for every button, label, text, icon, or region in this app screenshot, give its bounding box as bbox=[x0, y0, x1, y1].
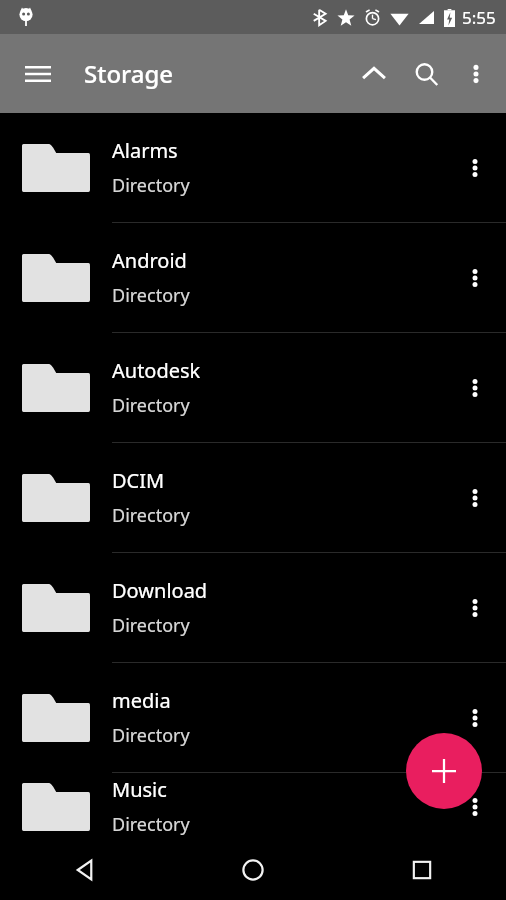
button[interactable]: More options bbox=[452, 50, 500, 98]
button[interactable]: More options for media bbox=[444, 663, 506, 772]
staticText: Music bbox=[112, 776, 167, 803]
button[interactable]: Home bbox=[168, 840, 337, 900]
staticText: Directory bbox=[112, 173, 190, 198]
button[interactable]: More options for Autodesk bbox=[444, 333, 506, 442]
staticText: Download bbox=[112, 577, 208, 604]
staticText: 5:55 bbox=[462, 6, 496, 29]
staticText: Directory bbox=[112, 503, 190, 528]
staticText: Directory bbox=[112, 812, 190, 837]
button[interactable]: More options for Download bbox=[444, 553, 506, 662]
staticText: Android bbox=[112, 247, 187, 274]
button[interactable]: Autodesk bbox=[0, 333, 506, 442]
button[interactable]: More options for Music bbox=[444, 773, 506, 840]
button[interactable]: Android bbox=[0, 223, 506, 332]
staticText: Directory bbox=[112, 723, 190, 748]
button[interactable]: Create new bbox=[406, 733, 482, 809]
button[interactable]: More options for Android bbox=[444, 223, 506, 332]
button[interactable]: More options for DCIM bbox=[444, 443, 506, 552]
button[interactable]: Back bbox=[0, 840, 168, 900]
staticText: Directory bbox=[112, 393, 190, 418]
button[interactable]: Search bbox=[400, 48, 452, 100]
button[interactable]: Music bbox=[0, 773, 506, 840]
staticText: Storage bbox=[84, 57, 174, 90]
staticText: Directory bbox=[112, 613, 190, 638]
staticText: media bbox=[112, 687, 171, 714]
button[interactable]: DCIM bbox=[0, 443, 506, 552]
button[interactable]: Open navigation drawer bbox=[10, 46, 66, 102]
staticText: Directory bbox=[112, 283, 190, 308]
staticText: DCIM bbox=[112, 467, 165, 494]
staticText: Autodesk bbox=[112, 357, 201, 384]
button[interactable]: More options for Alarms bbox=[444, 113, 506, 222]
button[interactable]: Alarms bbox=[0, 113, 506, 222]
button[interactable]: Download bbox=[0, 553, 506, 662]
button[interactable]: Recent apps bbox=[337, 840, 506, 900]
staticText: Alarms bbox=[112, 137, 178, 164]
button[interactable]: media bbox=[0, 663, 506, 772]
button[interactable]: Go up bbox=[348, 48, 400, 100]
